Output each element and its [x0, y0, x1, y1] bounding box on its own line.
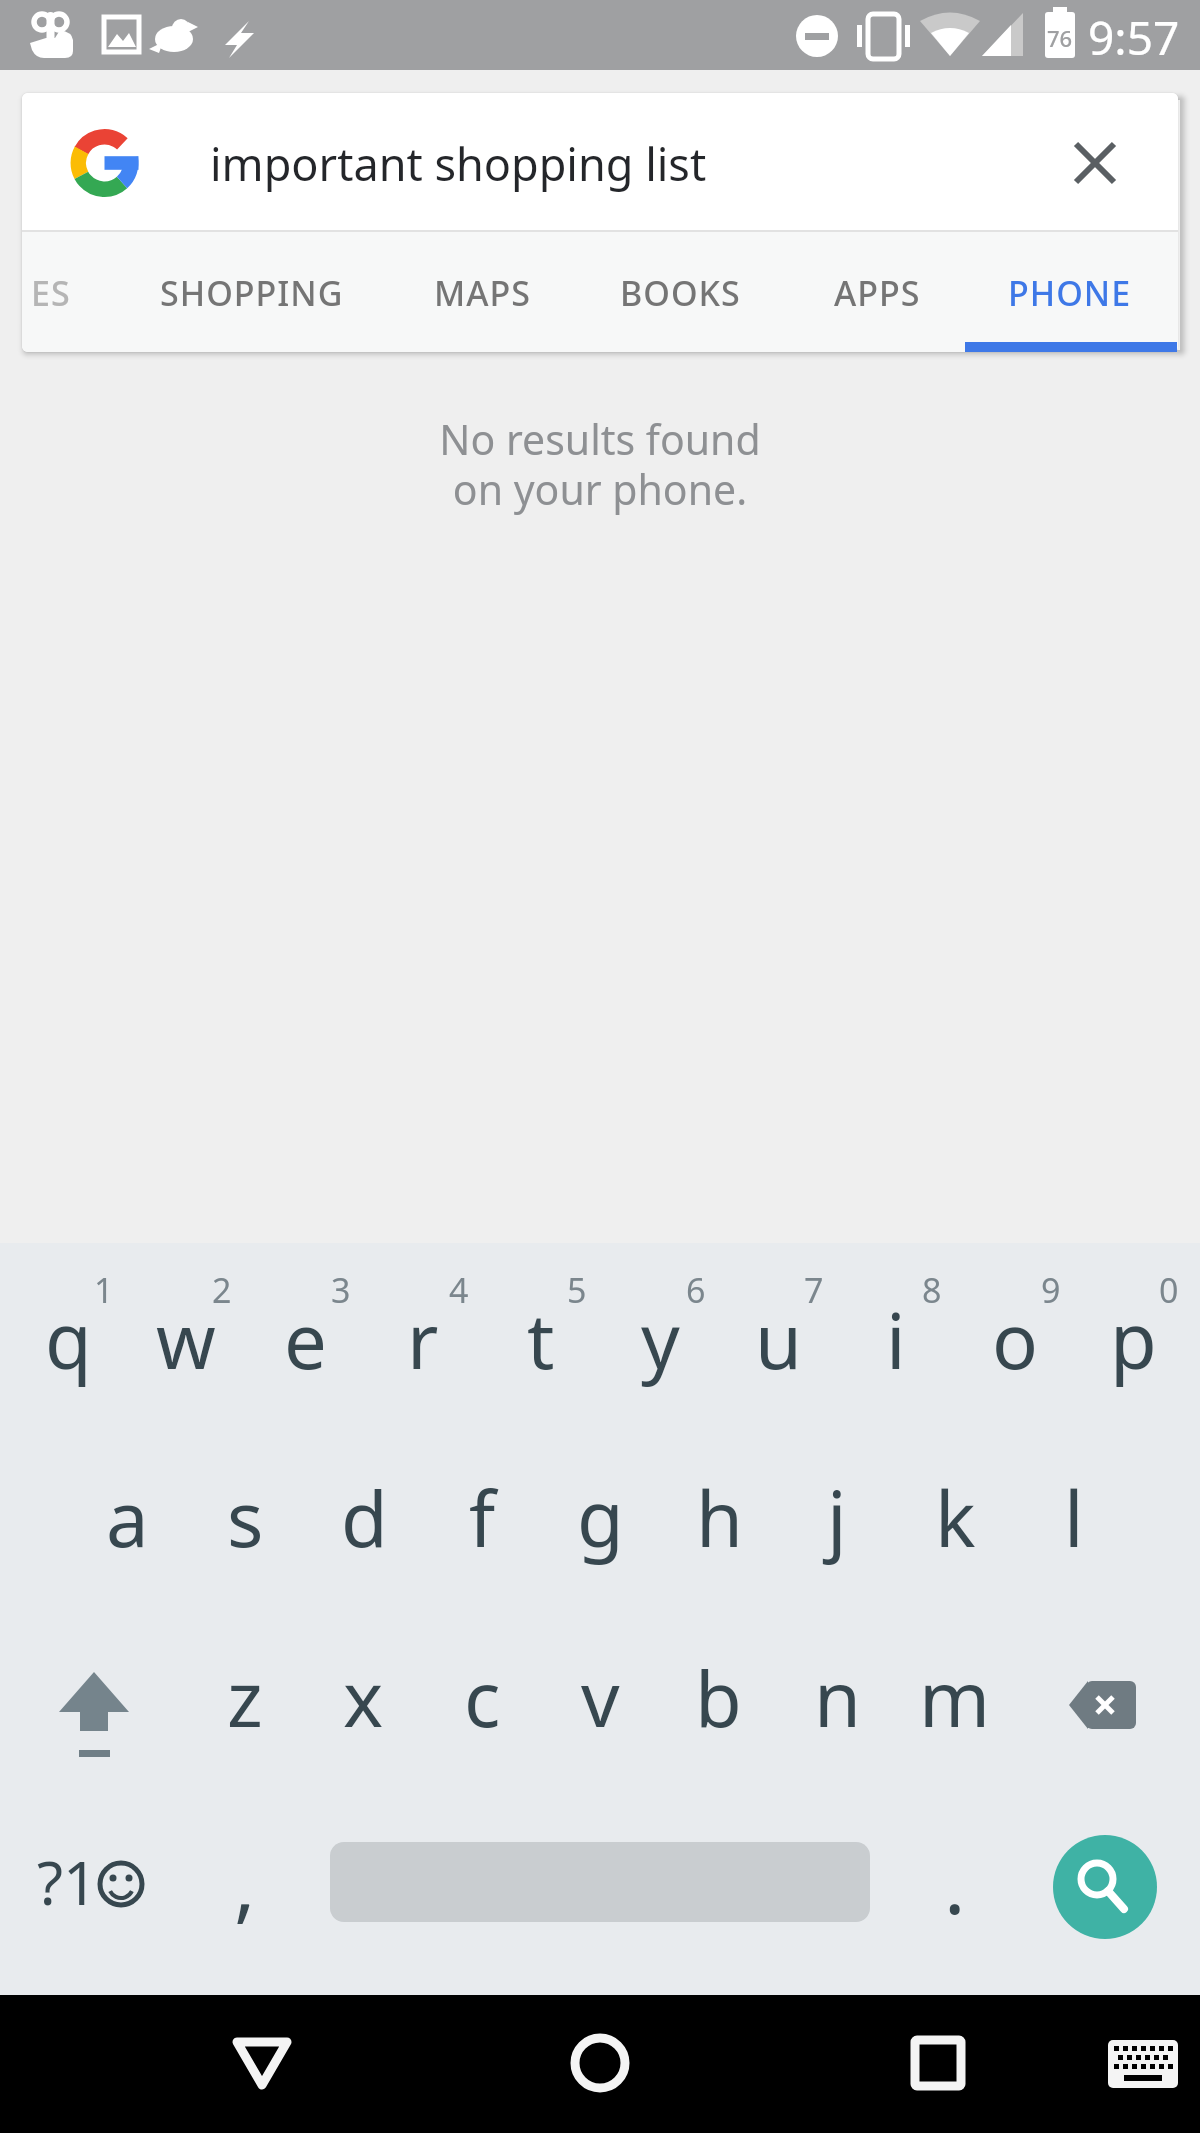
button[interactable]: v — [544, 1618, 656, 1778]
staticText: PHONE — [1008, 270, 1132, 316]
button[interactable]: e — [249, 1275, 361, 1405]
button[interactable]: p — [1077, 1275, 1189, 1405]
button[interactable]: u — [722, 1275, 834, 1405]
staticText: y — [641, 1288, 680, 1392]
staticText: i — [886, 1288, 906, 1392]
button[interactable] — [1088, 2008, 1198, 2118]
staticText: w — [156, 1288, 216, 1392]
button[interactable]: PHONE — [965, 234, 1175, 352]
button[interactable]: SHOPPING — [147, 234, 357, 352]
button[interactable]: q — [12, 1275, 124, 1405]
button[interactable]: d — [308, 1438, 420, 1598]
button[interactable]: f — [426, 1438, 538, 1598]
staticText: 0 — [1159, 1267, 1179, 1311]
staticText: x — [343, 1646, 384, 1750]
staticText: j — [827, 1466, 847, 1570]
staticText: ES — [31, 270, 71, 316]
staticText: l — [1064, 1466, 1084, 1570]
staticText: 5 — [567, 1267, 587, 1311]
staticText: , — [234, 1828, 256, 1937]
staticText: g — [577, 1466, 624, 1570]
button[interactable]: APPS — [777, 234, 977, 352]
staticText: ?1 — [37, 1841, 98, 1923]
staticText: . — [944, 1828, 966, 1937]
staticText: n — [814, 1646, 861, 1750]
button[interactable]: b — [662, 1618, 774, 1778]
staticText: No results found on your phone. — [439, 411, 761, 517]
button[interactable]: ?1 — [22, 1817, 112, 1947]
staticText: e — [284, 1288, 327, 1392]
button[interactable]: z — [189, 1618, 301, 1778]
staticText: BOOKS — [620, 270, 741, 316]
button[interactable] — [873, 1998, 1003, 2128]
staticText: c — [464, 1646, 501, 1750]
staticText: s — [227, 1466, 264, 1570]
staticText: d — [341, 1466, 388, 1570]
button[interactable]: w — [130, 1275, 242, 1405]
button[interactable]: t — [485, 1275, 597, 1405]
button[interactable] — [197, 1998, 327, 2128]
staticText: 9 — [1041, 1267, 1061, 1311]
button[interactable]: h — [663, 1438, 775, 1598]
staticText: t — [527, 1288, 555, 1392]
button[interactable]: c — [426, 1618, 538, 1778]
button[interactable]: MAPS — [382, 234, 582, 352]
staticText: p — [1110, 1288, 1157, 1392]
staticText: APPS — [834, 270, 921, 316]
button[interactable]: BOOKS — [580, 234, 780, 352]
button[interactable]: n — [781, 1618, 893, 1778]
button[interactable]: ES — [1, 234, 101, 352]
button[interactable] — [535, 1998, 665, 2128]
staticText: m — [919, 1646, 991, 1750]
staticText: SHOPPING — [160, 270, 344, 316]
staticText: 7 — [804, 1267, 824, 1311]
button[interactable] — [1025, 1630, 1185, 1780]
button[interactable]: , — [189, 1812, 301, 1952]
button[interactable] — [22, 93, 1178, 230]
staticText: MAPS — [434, 270, 531, 316]
button[interactable]: x — [307, 1618, 419, 1778]
button[interactable]: r — [367, 1275, 479, 1405]
staticText: u — [755, 1288, 802, 1392]
button[interactable]: s — [189, 1438, 301, 1598]
button[interactable] — [1053, 1835, 1157, 1939]
staticText: q — [45, 1288, 92, 1392]
staticText: 6 — [686, 1267, 706, 1311]
button[interactable] — [1050, 118, 1140, 208]
button[interactable]: y — [604, 1275, 716, 1405]
staticText: r — [407, 1288, 439, 1392]
staticText: 9:57 — [1088, 6, 1180, 69]
button[interactable]: a — [71, 1438, 183, 1598]
staticText: z — [227, 1646, 263, 1750]
button[interactable]: o — [959, 1275, 1071, 1405]
staticText: important shopping list — [210, 133, 707, 193]
staticText: 8 — [922, 1267, 942, 1311]
staticText: v — [581, 1646, 620, 1750]
staticText: 1 — [94, 1267, 114, 1311]
button[interactable] — [15, 1633, 175, 1783]
button[interactable]: . — [899, 1812, 1011, 1952]
button[interactable]: j — [781, 1438, 893, 1598]
staticText: 2 — [212, 1267, 232, 1311]
staticText: 3 — [331, 1267, 351, 1311]
button[interactable]: k — [899, 1438, 1011, 1598]
button[interactable]: m — [899, 1618, 1011, 1778]
staticText: 4 — [449, 1267, 469, 1311]
button[interactable]: i — [840, 1275, 952, 1405]
staticText: a — [106, 1466, 149, 1570]
staticText: k — [935, 1466, 976, 1570]
staticText: o — [992, 1288, 1038, 1392]
button[interactable]: l — [1018, 1438, 1130, 1598]
staticText: f — [469, 1466, 496, 1570]
button[interactable]: g — [544, 1438, 656, 1598]
staticText: 76 — [1047, 23, 1073, 53]
staticText: h — [696, 1466, 743, 1570]
staticText: b — [695, 1646, 742, 1750]
